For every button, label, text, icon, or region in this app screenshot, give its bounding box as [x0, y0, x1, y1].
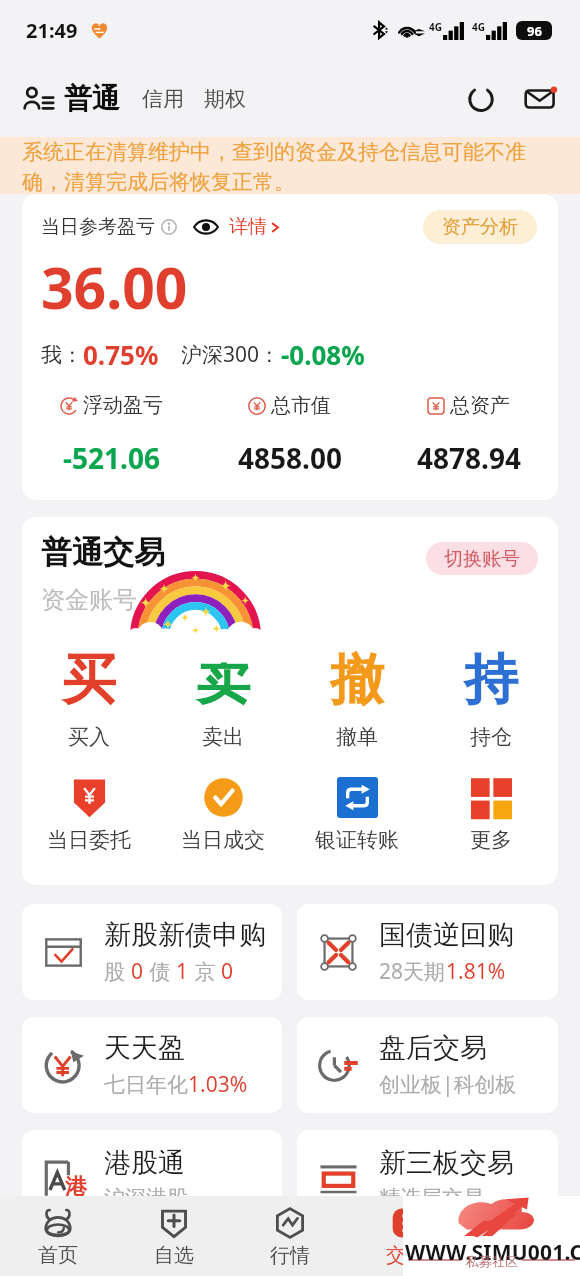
staticText: 系统正在清算维护中，查到的资金及持仓信息可能不准确，清算完成后将恢复正常。: [22, 139, 567, 194]
staticText: 当日成交: [181, 827, 265, 853]
staticText: 撤单: [336, 724, 378, 750]
button[interactable]: 首页: [0, 1196, 116, 1276]
staticText: 普通: [64, 81, 120, 116]
staticText: 1.81%: [446, 957, 506, 986]
staticText: 自选: [154, 1243, 194, 1268]
staticText: 债: [144, 957, 176, 986]
button[interactable]: 新三板交易: [297, 1130, 558, 1226]
staticText: 新三板交易: [379, 1146, 514, 1180]
button[interactable]: 期权: [204, 86, 246, 112]
button[interactable]: 信用: [142, 86, 184, 112]
staticText: 港: [65, 1173, 87, 1201]
staticText: 切换账号: [444, 547, 520, 571]
button[interactable]: Messages: [524, 82, 558, 116]
staticText: 首页: [38, 1243, 78, 1268]
staticText: 期权: [204, 86, 246, 112]
staticText: 更多: [470, 827, 512, 853]
button[interactable]: 港: [22, 1130, 282, 1226]
button[interactable]: 盘后交易: [297, 1017, 558, 1113]
staticText: 卖: [196, 646, 250, 714]
staticText: 创业板|科创板: [379, 1070, 517, 1099]
staticText: 4G: [472, 20, 485, 34]
staticText: 我：: [41, 342, 83, 368]
staticText: 新股新债申购: [104, 918, 266, 952]
staticText: 资产分析: [442, 215, 518, 239]
staticText: 0.75%: [83, 337, 159, 372]
staticText: 精选层交易: [379, 1185, 484, 1211]
button[interactable]: 普通: [64, 81, 120, 116]
staticText: 当日参考盈亏: [41, 215, 155, 239]
staticText: 持仓: [470, 724, 512, 750]
button[interactable]: 当日委托: [22, 777, 156, 853]
staticText: 买入: [68, 724, 110, 750]
staticText: 持: [464, 646, 518, 714]
button[interactable]: 详情: [229, 215, 283, 239]
staticText: 股: [104, 957, 131, 986]
staticText: 0: [131, 957, 144, 986]
button[interactable]: Account: [20, 81, 56, 117]
button[interactable]: 总资产: [379, 393, 558, 477]
staticText: 4G: [429, 20, 442, 34]
button[interactable]: 自选: [116, 1196, 232, 1276]
button[interactable]: 更多: [424, 777, 558, 853]
button[interactable]: 国债逆回购: [297, 904, 558, 1000]
staticText: 行情: [270, 1243, 310, 1268]
staticText: 银证转账: [315, 827, 399, 853]
button[interactable]: 浮动盈亏: [22, 393, 200, 477]
button[interactable]: 银证转账: [290, 777, 424, 853]
staticText: 4878.94: [417, 439, 521, 477]
staticText: 天天盈: [104, 1031, 185, 1065]
staticText: 撤: [330, 646, 384, 714]
button[interactable]: 当日成交: [156, 777, 290, 853]
staticText: 买: [62, 646, 116, 714]
staticText: 信用: [142, 86, 184, 112]
staticText: WWW.SIMU001.CN: [405, 1238, 580, 1267]
button[interactable]: 总市值: [200, 393, 379, 477]
staticText: 总市值: [271, 393, 331, 418]
button[interactable]: 买: [22, 646, 156, 750]
staticText: 卖出: [202, 724, 244, 750]
button[interactable]: 切换账号: [426, 542, 538, 575]
staticText: 96: [527, 22, 542, 40]
button[interactable]: 我的: [464, 1196, 580, 1276]
staticText: 36.00: [41, 248, 188, 326]
staticText: 4858.00: [238, 439, 342, 477]
staticText: 总资产: [450, 393, 510, 418]
button[interactable]: 交易: [348, 1196, 464, 1276]
button[interactable]: 天天盈: [22, 1017, 282, 1113]
staticText: -0.08%: [281, 337, 365, 372]
button[interactable]: 资产分析: [423, 210, 537, 244]
button[interactable]: 卖: [156, 646, 290, 750]
staticText: 当日委托: [47, 827, 131, 853]
staticText: 沪深300：: [181, 340, 281, 369]
staticText: 普通交易: [41, 533, 165, 572]
staticText: 国债逆回购: [379, 918, 514, 952]
staticText: 0: [221, 957, 234, 986]
button[interactable]: Refresh: [464, 82, 498, 116]
staticText: 1: [176, 957, 189, 986]
staticText: 28天期: [379, 957, 446, 986]
staticText: 盘后交易: [379, 1031, 487, 1065]
staticText: 我的: [502, 1243, 542, 1268]
staticText: -521.06: [63, 439, 160, 477]
button[interactable]: 新股新债申购: [22, 904, 282, 1000]
button[interactable]: 行情: [232, 1196, 348, 1276]
staticText: 资金账号: [41, 585, 137, 615]
button[interactable]: 撤: [290, 646, 424, 750]
button[interactable]: Toggle visibility: [193, 214, 219, 240]
staticText: 1.03%: [188, 1070, 248, 1099]
staticText: 沪深港股: [104, 1185, 188, 1211]
staticText: 浮动盈亏: [83, 393, 163, 418]
staticText: 交易: [386, 1243, 426, 1268]
staticText: 七日年化: [104, 1072, 188, 1098]
staticText: 21:49: [26, 17, 78, 44]
staticText: 京: [189, 957, 221, 986]
staticText: 港股通: [104, 1146, 185, 1180]
staticText: 私募社区: [466, 1253, 518, 1269]
button[interactable]: 持: [424, 646, 558, 750]
staticText: 详情: [229, 215, 267, 239]
